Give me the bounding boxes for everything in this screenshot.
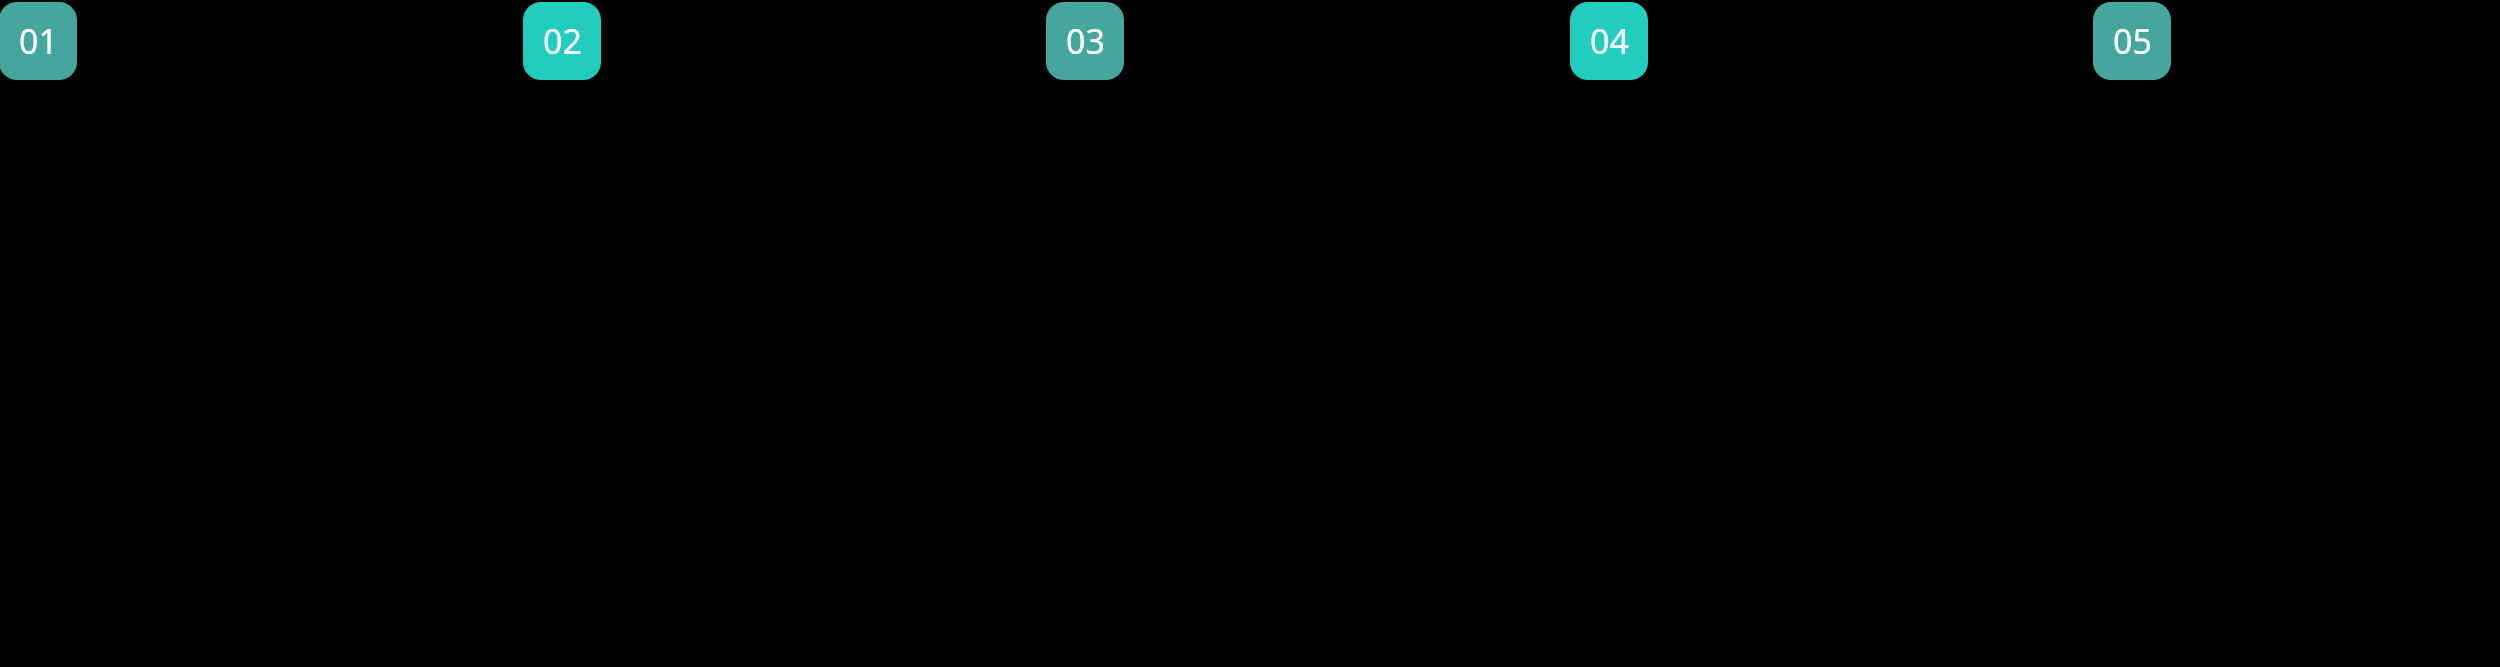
staticText: 04 bbox=[1590, 18, 1629, 64]
button[interactable]: Step 04 bbox=[1570, 2, 1648, 80]
staticText: 05 bbox=[2113, 18, 2152, 64]
button[interactable]: Step 02 bbox=[523, 2, 601, 80]
button[interactable]: Step 01 bbox=[0, 2, 77, 80]
staticText: 03 bbox=[1066, 18, 1105, 64]
button[interactable]: Step 05 bbox=[2093, 2, 2171, 80]
staticText: 01 bbox=[19, 18, 58, 64]
staticText: 02 bbox=[543, 18, 582, 64]
button[interactable]: Step 03 bbox=[1046, 2, 1124, 80]
